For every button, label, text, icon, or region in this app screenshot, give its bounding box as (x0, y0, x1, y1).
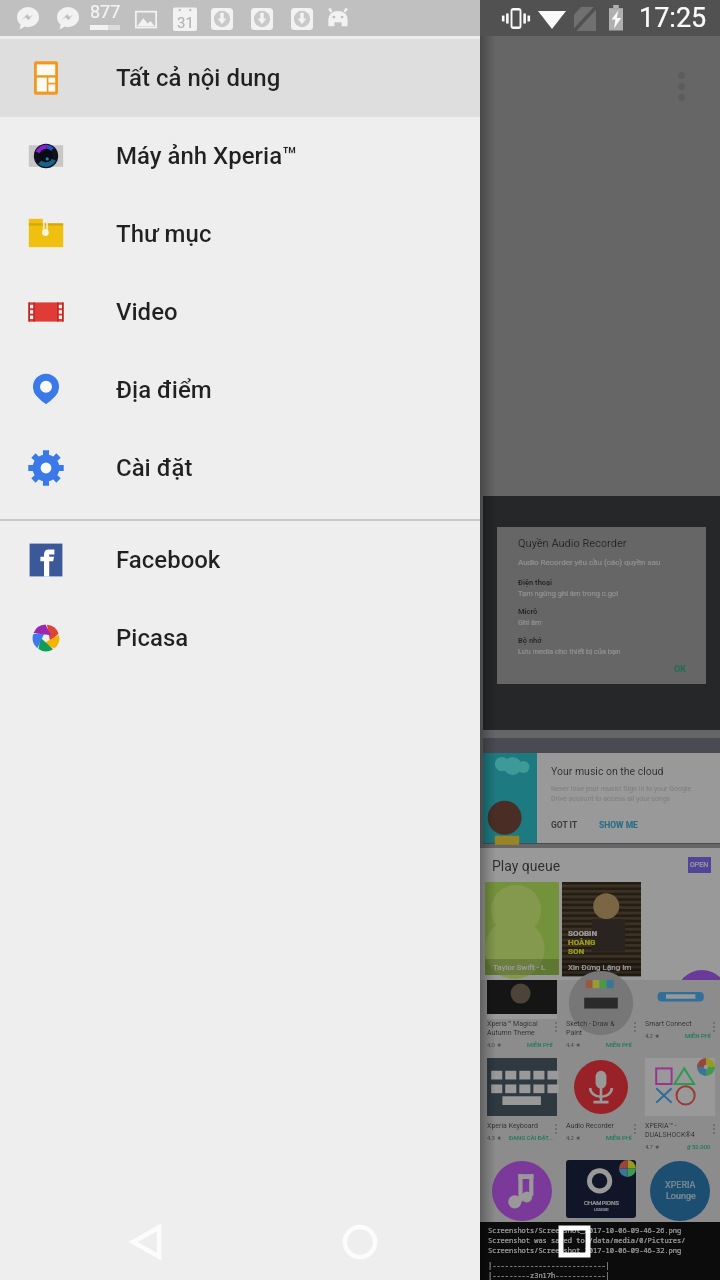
staticText: CHAMPIONS (584, 1199, 619, 1206)
button[interactable]: Home (331, 1216, 389, 1268)
staticText: 4,2 ★ (645, 1032, 660, 1039)
staticText: Drive account to access all your songs (551, 795, 671, 803)
staticText: 4,2 ★ (566, 1134, 581, 1141)
staticText: Ghi âm (518, 618, 542, 627)
staticText: Thư mục (116, 220, 212, 248)
staticText: SOOBIN (568, 929, 598, 938)
staticText: OK (674, 664, 686, 675)
staticText: 4,7 ★ (645, 1143, 660, 1150)
staticText: Lưu media cho thiết bị của bạn (518, 647, 621, 656)
staticText: Tạm ngừng ghi âm trong c.gọi (518, 589, 618, 598)
staticText: Xin Đừng Lặng Im (568, 963, 632, 972)
staticText: XPERIA (665, 1180, 696, 1191)
staticText: Bộ nhớ (518, 636, 542, 645)
staticText: HOÀNG (568, 938, 596, 947)
staticText: Quyền Audio Recorder (518, 537, 627, 550)
button[interactable]: Video (0, 273, 480, 351)
staticText: Xperia™ Magical Autumn Theme (487, 1020, 538, 1037)
button[interactable]: Thư mục (0, 195, 480, 273)
staticText: Lounge (666, 1191, 696, 1202)
staticText: Audio Recorder (566, 1122, 614, 1130)
staticText: Screenshot was saved to /data/media/0/Pi… (488, 1236, 686, 1246)
staticText: Sketch - Draw & Paint (566, 1020, 615, 1037)
staticText: |---------z3n17h------------| (488, 1271, 610, 1280)
staticText: MIỄN PHÍ (527, 1041, 553, 1048)
button[interactable]: Cài đặt (0, 429, 480, 507)
staticText: MIỄN PHÍ (606, 1134, 632, 1141)
staticText: GOT IT (551, 820, 578, 830)
staticText: ĐANG CÀI ĐẶT... (509, 1134, 553, 1141)
button[interactable]: Picasa (0, 599, 480, 677)
staticText: Máy ảnh Xperia™ (116, 142, 298, 170)
staticText: Micrô (518, 607, 538, 616)
staticText: 4,3 ★ (487, 1134, 502, 1141)
staticText: 4,0 ★ (487, 1041, 502, 1048)
staticText: MIỄN PHÍ (685, 1032, 711, 1039)
staticText: Screenshots/Screenshot_2017-10-06-09-46-… (488, 1246, 682, 1256)
staticText: Smart Connect (645, 1020, 692, 1028)
staticText: Taylor Swift - L (493, 963, 546, 972)
staticText: LEAGUE (594, 1207, 609, 1212)
button[interactable]: Địa điểm (0, 351, 480, 429)
staticText: Facebook (116, 546, 221, 574)
staticText: MIỄN PHÍ (606, 1041, 632, 1048)
staticText: 17:25 (639, 2, 707, 34)
button[interactable]: Máy ảnh Xperia™ (0, 117, 480, 195)
button[interactable]: Tất cả nội dung (0, 39, 480, 117)
staticText: Never lose your music! Sign in to your G… (551, 785, 692, 793)
staticText: Địa điểm (116, 376, 212, 404)
staticText: Xperia Keyboard (487, 1122, 538, 1130)
staticText: Audio Recorder yêu cầu (các) quyền sau (518, 558, 661, 567)
staticText: Play queue (492, 858, 561, 874)
staticText: Your music on the cloud (551, 765, 664, 777)
staticText: |---------------------------| (488, 1261, 610, 1271)
staticText: XPERIA™ - DUALSHOCK®4 (645, 1122, 695, 1139)
staticText: 4,4 ★ (566, 1041, 581, 1048)
staticText: OPEN (690, 861, 709, 869)
staticText: SHOW ME (599, 820, 638, 830)
staticText: Video (116, 298, 178, 326)
staticText: ₫ 52.000 (687, 1143, 711, 1150)
staticText: 877 (90, 1, 121, 22)
staticText: Điện thoại (518, 578, 553, 587)
staticText: Tất cả nội dung (116, 64, 281, 92)
staticText: SON (568, 947, 585, 956)
staticText: Cài đặt (116, 454, 193, 482)
button[interactable]: Facebook (0, 521, 480, 599)
staticText: 31 (177, 14, 194, 32)
staticText: Screenshots/Screenshot_2017-10-06-09-46-… (488, 1226, 682, 1236)
staticText: Picasa (116, 624, 189, 652)
button[interactable]: Back (117, 1216, 175, 1268)
button[interactable]: Recents (561, 1228, 588, 1255)
